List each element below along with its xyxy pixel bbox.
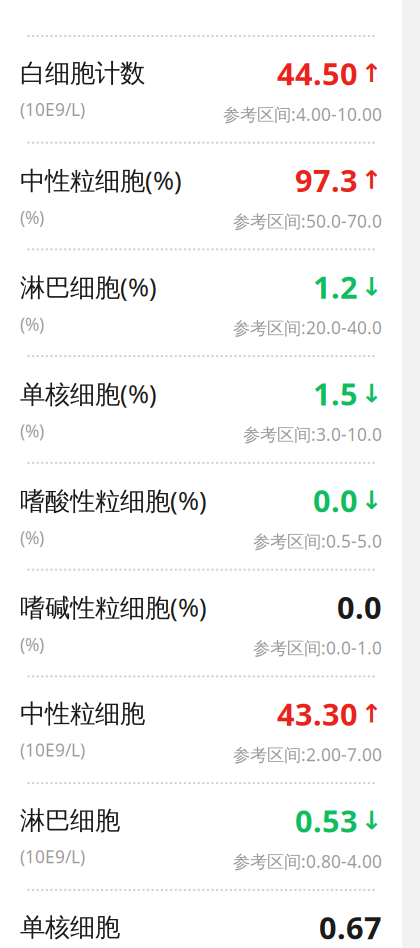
staticText: 97.3 (295, 160, 358, 200)
staticText: 0.53 (295, 800, 358, 841)
staticText: ↑ (361, 166, 382, 194)
button[interactable]: 中性粒细胞(%) (20, 144, 382, 248)
staticText: 1.2 (313, 266, 358, 307)
staticText: ↑ (361, 699, 382, 728)
staticText: 参考区间:0.5-5.0 (253, 530, 382, 553)
staticText: (10E9/L) (20, 98, 85, 121)
staticText: 参考区间:20.0-40.0 (233, 316, 382, 339)
staticText: (%) (20, 633, 44, 656)
staticText: 中性粒细胞 (20, 698, 145, 729)
staticText: (10E9/L) (20, 738, 85, 761)
staticText: 0.0 (313, 480, 358, 521)
button[interactable]: 白细胞计数 (20, 37, 382, 142)
button[interactable]: 单核细胞 (20, 891, 382, 948)
staticText: (%) (20, 206, 44, 229)
staticText: 44.50 (277, 53, 358, 94)
staticText: (10E9/L) (20, 845, 85, 868)
staticText: 白针后 (26, 0, 251, 36)
staticText: 参考区间:0.0-1.0 (253, 636, 382, 659)
staticText: (%) (20, 419, 44, 442)
button[interactable]: 单核细胞(%) (20, 357, 382, 462)
button[interactable]: 嗜碱性粒细胞(%) (20, 571, 382, 675)
button[interactable]: 淋巴细胞 (20, 784, 382, 889)
button[interactable]: 中性粒细胞 (20, 677, 382, 782)
staticText: 淋巴细胞 (20, 805, 120, 836)
button[interactable]: 嗜酸性粒细胞(%) (20, 464, 382, 569)
button[interactable]: 淋巴细胞(%) (20, 250, 382, 355)
staticText: 嗜碱性粒细胞(%) (20, 590, 207, 624)
staticText: ↑ (361, 59, 382, 88)
staticText: (%) (20, 526, 44, 549)
staticText: ↓ (361, 272, 382, 301)
staticText: 0.67 (319, 907, 382, 948)
staticText: 淋巴细胞(%) (20, 270, 157, 304)
staticText: 中性粒细胞(%) (20, 163, 182, 197)
staticText: 单核细胞(%) (20, 377, 157, 410)
staticText: 1.5 (313, 373, 358, 414)
staticText: 参考区间:50.0-70.0 (233, 209, 382, 232)
staticText: 单核细胞 (20, 912, 120, 943)
staticText: (%) (20, 313, 44, 336)
staticText: 参考区间:4.00-10.00 (223, 103, 382, 126)
staticText: 43.30 (277, 693, 358, 734)
staticText: 参考区间:2.00-7.00 (233, 743, 382, 766)
staticText: 0.0 (337, 587, 382, 627)
staticText: 白细胞计数 (20, 58, 145, 89)
staticText: ↓ (361, 379, 382, 408)
staticText: 参考区间:0.80-4.00 (233, 850, 382, 873)
staticText: 参考区间:3.0-10.0 (243, 423, 382, 446)
staticText: ↓ (361, 806, 382, 835)
staticText: 嗜酸性粒细胞(%) (20, 483, 207, 517)
staticText: ↓ (361, 486, 382, 515)
